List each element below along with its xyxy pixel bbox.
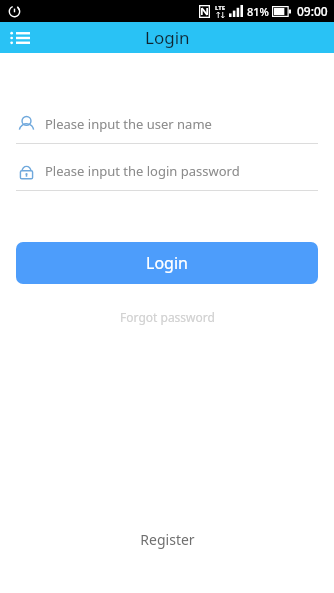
- staticText: Forgot password: [120, 309, 215, 325]
- staticText: Register: [140, 530, 195, 549]
- button[interactable]: Password: [0, 152, 334, 191]
- staticText: Login: [146, 252, 188, 274]
- button[interactable]: User name: [0, 105, 334, 144]
- staticText: LTE: [215, 4, 226, 12]
- button[interactable]: Login: [16, 242, 318, 284]
- button[interactable]: Forgot password: [108, 306, 227, 328]
- other: User name: [17, 115, 36, 134]
- staticText: Login: [145, 26, 190, 49]
- button[interactable]: Register: [122, 525, 213, 554]
- staticText: Please input the login password: [45, 162, 240, 180]
- button[interactable]: Menu: [0, 22, 40, 53]
- staticText: 09:00: [297, 3, 328, 19]
- staticText: 81%: [247, 4, 269, 19]
- other: Password: [17, 162, 36, 181]
- staticText: Please input the user name: [45, 115, 212, 133]
